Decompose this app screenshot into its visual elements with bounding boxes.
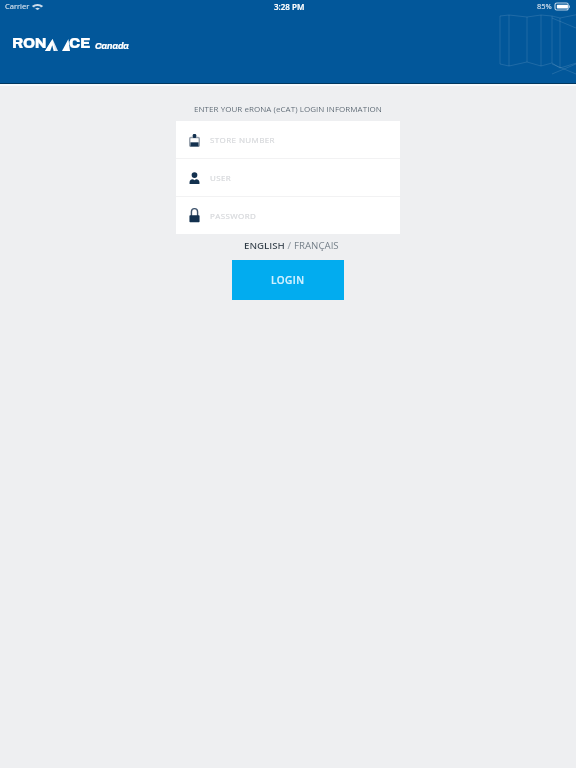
button[interactable]: LOGIN [232, 260, 344, 300]
staticText: Carrier [5, 1, 30, 11]
button[interactable]: ENGLISH [244, 239, 285, 252]
staticText: 85% [537, 1, 552, 11]
staticText: LOGIN [271, 273, 305, 287]
staticText: STORE NUMBER [210, 134, 275, 145]
button[interactable]: FRANÇAIS [294, 239, 339, 252]
staticText: 3:28 PM [274, 1, 305, 12]
staticText: USER [210, 172, 232, 183]
button[interactable]: Store number [176, 121, 400, 158]
staticText: ENGLISH [244, 239, 285, 252]
staticText: ENTER YOUR eRONA (eCAT) LOGIN INFORMATIO… [194, 103, 382, 114]
other: User [189, 172, 200, 184]
button[interactable]: Password [176, 197, 400, 234]
staticText: FRANÇAIS [294, 239, 339, 252]
staticText: CE [69, 35, 91, 51]
other: Password [189, 210, 200, 223]
button[interactable]: User [176, 159, 400, 196]
staticText: Canada [95, 41, 129, 51]
staticText: PASSWORD [210, 210, 257, 221]
staticText: / [285, 239, 294, 252]
other: Store number [189, 134, 200, 147]
staticText: RON [12, 35, 47, 51]
